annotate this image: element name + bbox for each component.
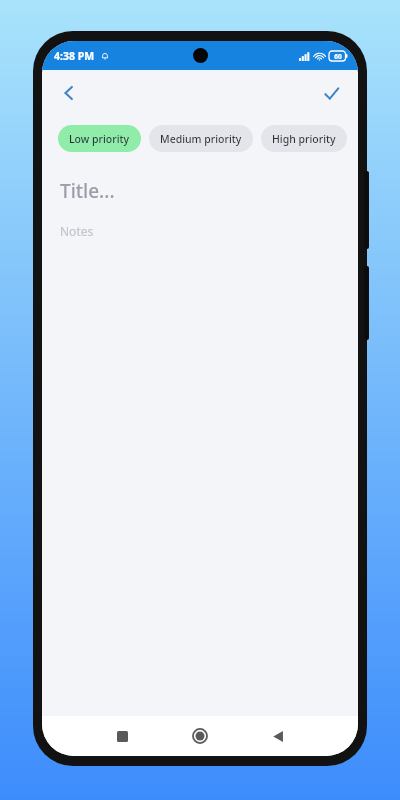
staticText: 60 xyxy=(334,52,342,61)
button[interactable]: Back xyxy=(261,719,295,753)
staticText: High priority xyxy=(272,132,336,146)
button[interactable]: Low priority xyxy=(58,125,141,152)
staticText: 4:38 PM xyxy=(54,49,95,63)
staticText: Title... xyxy=(60,178,115,204)
button[interactable]: Back xyxy=(50,74,88,112)
button[interactable]: Medium priority xyxy=(149,125,253,152)
staticText: Low priority xyxy=(69,132,130,146)
staticText: Medium priority xyxy=(160,132,242,146)
button[interactable]: Recent apps xyxy=(105,719,139,753)
button[interactable]: Save xyxy=(312,74,350,112)
button[interactable]: High priority xyxy=(261,125,347,152)
staticText: Notes xyxy=(60,223,94,239)
button[interactable]: Home xyxy=(183,719,217,753)
